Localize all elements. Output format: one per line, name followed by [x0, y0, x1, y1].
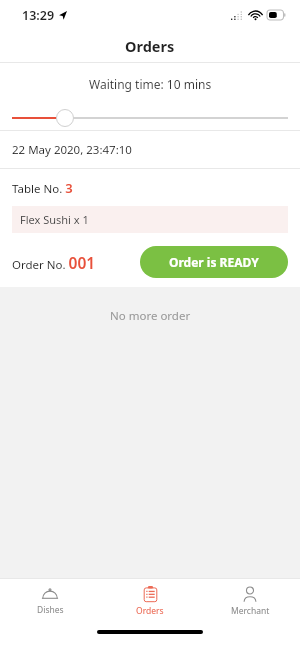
button[interactable]: Merchant [200, 586, 300, 617]
staticText: No more order [110, 308, 191, 324]
button[interactable]: Orders [100, 586, 200, 617]
staticText: Orders [136, 605, 164, 617]
staticText: 22 May 2020, 23:47:10 [12, 142, 132, 158]
staticText: Order No. 001 [12, 252, 96, 273]
staticText: Merchant [231, 605, 270, 617]
button[interactable]: Dishes [0, 586, 100, 616]
staticText: Waiting time: 10 mins [89, 76, 212, 92]
staticText: Flex Sushi x 1 [20, 212, 89, 227]
staticText: Table No. 3 [12, 179, 73, 197]
staticText: Dishes [37, 604, 64, 616]
button[interactable]: Order is READY [140, 246, 288, 278]
button[interactable] [0, 106, 300, 130]
staticText: Orders [125, 36, 175, 56]
staticText: 13:29 [22, 7, 55, 24]
staticText: Order is READY [169, 254, 259, 270]
